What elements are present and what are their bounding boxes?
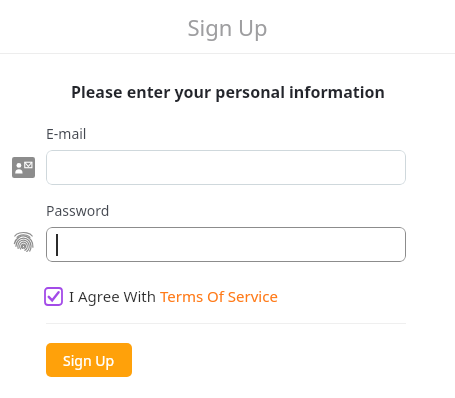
button[interactable]: Terms Of Service [160,286,278,306]
staticText: Sign Up [63,351,115,370]
button[interactable]: I Agree With [45,286,160,306]
staticText: Password [46,201,110,220]
button[interactable] [46,227,406,262]
staticText: I Agree With [69,286,160,306]
button[interactable]: Sign Up [46,343,132,377]
staticText: E-mail [46,124,87,143]
button[interactable]: Fingerprint login [0,227,46,262]
button[interactable] [46,150,406,185]
button[interactable]: E-mail contact [0,150,46,185]
staticText: Please enter your personal information [71,81,385,103]
staticText: Sign Up [187,12,268,42]
